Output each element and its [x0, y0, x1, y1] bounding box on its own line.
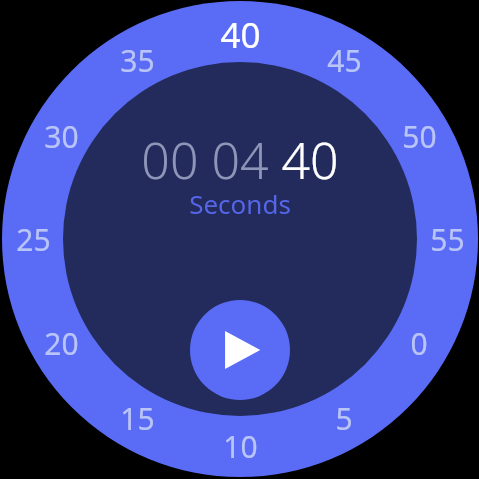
staticText: 40	[220, 11, 261, 53]
staticText: 15	[120, 398, 155, 439]
staticText: 20	[44, 323, 79, 364]
staticText: 00 04 40	[141, 126, 339, 186]
staticText: 30	[44, 116, 79, 157]
staticText: Seconds	[189, 186, 291, 220]
staticText: 50	[402, 116, 437, 157]
staticText: 35	[120, 40, 155, 81]
staticText: 25	[16, 219, 51, 260]
staticText: 5	[335, 398, 353, 439]
staticText: 10	[223, 426, 258, 467]
staticText: 0	[410, 323, 428, 364]
staticText: 55	[430, 219, 465, 260]
button[interactable]: Start timer	[190, 300, 290, 400]
staticText: 45	[327, 40, 362, 81]
